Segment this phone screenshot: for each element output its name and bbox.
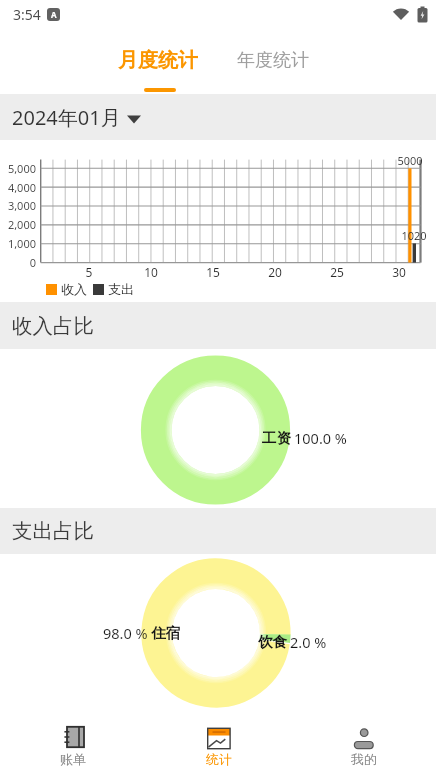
button[interactable]: 我的	[291, 715, 436, 767]
staticText: 4,000	[0, 180, 36, 195]
staticText: 收入	[61, 281, 87, 297]
staticText: 98.0 %	[103, 623, 148, 643]
button[interactable]: 月度统计	[118, 48, 198, 73]
button[interactable]: 统计	[146, 715, 291, 767]
staticText: 100.0 %	[294, 428, 347, 448]
staticText: 30	[385, 264, 413, 280]
staticText: 2,000	[0, 217, 36, 232]
staticText: 10	[137, 264, 165, 280]
staticText: 饮食	[258, 633, 287, 651]
staticText: 统计	[206, 751, 232, 767]
staticText: 5,000	[0, 161, 36, 176]
staticText: 2.0 %	[290, 632, 327, 652]
staticText: 15	[199, 264, 227, 280]
staticText: 工资	[262, 429, 291, 447]
staticText: 5000	[394, 153, 426, 168]
staticText: 我的	[351, 751, 377, 767]
staticText: 2024年01月	[12, 104, 121, 131]
staticText: 支出	[108, 281, 134, 297]
staticText: 1,000	[0, 236, 36, 251]
button[interactable]: 2024年01月	[0, 94, 436, 140]
staticText: A	[51, 9, 57, 20]
staticText: 25	[323, 264, 351, 280]
staticText: 年度统计	[237, 49, 309, 72]
staticText: 0	[0, 255, 36, 270]
button[interactable]: 账单	[0, 715, 146, 767]
staticText: 收入占比	[12, 313, 94, 339]
staticText: 3:54	[13, 5, 41, 24]
staticText: 支出占比	[12, 518, 94, 544]
button[interactable]: 年度统计	[237, 49, 309, 72]
staticText: 账单	[60, 751, 86, 767]
staticText: 3,000	[0, 198, 36, 213]
staticText: 月度统计	[118, 48, 198, 73]
staticText: 20	[261, 264, 289, 280]
staticText: 1020	[398, 228, 430, 243]
staticText: 5	[75, 264, 103, 280]
staticText: 住宿	[151, 624, 180, 642]
